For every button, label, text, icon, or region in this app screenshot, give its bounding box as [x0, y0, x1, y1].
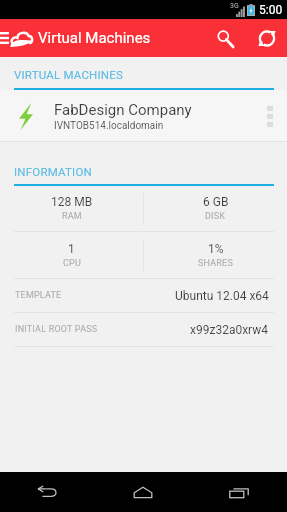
button[interactable]: Back	[0, 472, 95, 512]
staticText: Virtual Machines	[38, 29, 151, 47]
button[interactable]: Recent apps	[191, 472, 287, 512]
staticText: VIRTUAL MACHINES	[14, 68, 123, 81]
staticText: IVNTOB514.localdomain	[54, 120, 164, 132]
staticText: DISK	[205, 211, 226, 222]
button[interactable]: Refresh	[247, 19, 287, 57]
button[interactable]: INITIAL ROOT PASS	[0, 313, 287, 346]
staticText: SHARES	[198, 258, 233, 269]
staticText: RAM	[62, 211, 82, 222]
staticText: 1	[68, 242, 75, 256]
staticText: 128 MB	[51, 195, 93, 209]
button[interactable]: 128 MB	[0, 186, 143, 231]
staticText: 1%	[208, 242, 224, 256]
button[interactable]: 1	[0, 232, 143, 278]
button[interactable]: TEMPLATE	[0, 279, 287, 312]
staticText: 6 GB	[203, 195, 229, 209]
staticText: FabDesign Company	[54, 101, 192, 119]
button[interactable]: 1%	[144, 232, 287, 278]
staticText: 5:00	[259, 3, 283, 17]
staticText: x99z32a0xrw4	[190, 323, 269, 337]
staticText: Ubuntu 12.04 x64	[175, 289, 269, 303]
staticText: CPU	[63, 258, 81, 269]
button[interactable]: Search	[205, 19, 247, 57]
button[interactable]: Home	[95, 472, 191, 512]
staticText: INITIAL ROOT PASS	[15, 324, 98, 335]
button[interactable]: FabDesign Company	[0, 90, 287, 142]
button[interactable]: Open navigation	[0, 19, 33, 57]
button[interactable]: More options	[253, 90, 287, 142]
staticText: 3G	[230, 2, 239, 10]
other: Open navigation	[0, 32, 9, 44]
button[interactable]: 6 GB	[144, 186, 287, 231]
staticText: TEMPLATE	[15, 290, 62, 301]
staticText: INFORMATION	[14, 165, 92, 178]
